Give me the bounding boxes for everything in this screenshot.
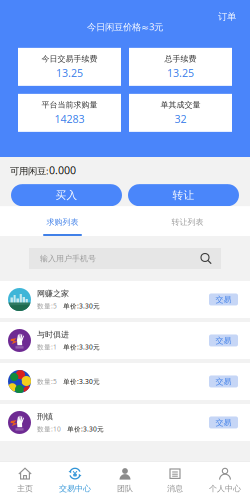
staticText: 数量:10 bbox=[37, 424, 61, 433]
button[interactable]: 团队 bbox=[100, 462, 150, 498]
staticText: 14283 bbox=[54, 112, 84, 126]
staticText: 今日交易手续费 bbox=[41, 54, 97, 64]
staticText: 13.25 bbox=[167, 66, 194, 80]
staticText: 单其成交量 bbox=[160, 100, 200, 110]
button[interactable]: 刑镇 bbox=[0, 404, 250, 441]
staticText: 32 bbox=[174, 112, 186, 126]
button[interactable]: 与时俱进 bbox=[0, 322, 250, 359]
button[interactable]: 消息 bbox=[150, 462, 200, 498]
staticText: 交易中心 bbox=[59, 484, 91, 493]
button[interactable]: 个人中心 bbox=[200, 462, 250, 498]
button[interactable]: 订单 bbox=[218, 11, 236, 22]
staticText: 总手续费 bbox=[164, 54, 196, 64]
button[interactable]: 网赚之家 bbox=[0, 281, 250, 318]
staticText: 输入用户手机号 bbox=[40, 254, 96, 263]
button[interactable]: 数量:5 bbox=[0, 363, 250, 400]
button[interactable]: 买入 bbox=[11, 184, 122, 206]
button[interactable]: 交易中心 bbox=[50, 462, 100, 498]
button[interactable]: 转让列表 bbox=[125, 217, 250, 236]
staticText: 消息 bbox=[167, 484, 183, 493]
staticText: 可用闲豆:0.000 bbox=[10, 163, 76, 177]
staticText: 数量:1 bbox=[37, 342, 57, 351]
staticText: 交易 bbox=[215, 418, 231, 427]
button[interactable]: 转让 bbox=[128, 184, 239, 206]
staticText: 数量:5 bbox=[37, 301, 57, 310]
button[interactable]: 求购列表 bbox=[0, 217, 125, 236]
button[interactable]: 输入用户手机号 bbox=[29, 248, 221, 269]
staticText: 订单 bbox=[218, 11, 236, 22]
button[interactable]: 主页 bbox=[0, 462, 50, 498]
staticText: 单价:3.30元 bbox=[63, 301, 100, 310]
staticText: 主页 bbox=[17, 484, 33, 493]
staticText: 13.25 bbox=[56, 66, 83, 80]
staticText: 转让 bbox=[172, 189, 194, 202]
staticText: 单价:3.30元 bbox=[63, 342, 100, 351]
staticText: 买入 bbox=[55, 189, 77, 202]
staticText: 数量:5 bbox=[37, 377, 57, 386]
staticText: 与时俱进 bbox=[37, 330, 69, 339]
staticText: 交易 bbox=[215, 377, 231, 386]
staticText: 求购列表 bbox=[46, 217, 78, 227]
staticText: 团队 bbox=[117, 484, 133, 493]
staticText: 网赚之家 bbox=[37, 289, 69, 298]
staticText: 交易 bbox=[215, 336, 231, 345]
staticText: 交易 bbox=[215, 295, 231, 304]
staticText: 单价:3.30元 bbox=[67, 424, 104, 433]
staticText: 个人中心 bbox=[209, 484, 241, 493]
staticText: 单价:3.30元 bbox=[63, 377, 100, 386]
staticText: 转让列表 bbox=[171, 217, 203, 227]
staticText: 刑镇 bbox=[37, 412, 53, 421]
staticText: 今日闲豆价格≈3元 bbox=[87, 20, 163, 33]
staticText: 平台当前求购量 bbox=[41, 100, 97, 110]
